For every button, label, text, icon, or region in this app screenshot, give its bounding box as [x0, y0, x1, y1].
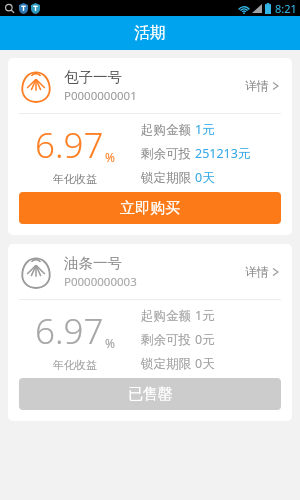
button[interactable]: 详情	[237, 72, 281, 99]
staticText: 6.97	[35, 121, 104, 169]
staticText: 6.97	[35, 307, 104, 355]
staticText: 立即购买	[120, 199, 180, 218]
staticText: 已售罄	[128, 385, 173, 404]
button[interactable]: 已售罄	[19, 378, 281, 410]
staticText: 0天	[195, 355, 215, 372]
staticText: 8:21	[275, 1, 297, 16]
staticText: 251213元	[195, 145, 251, 162]
staticText: 年化收益	[53, 358, 97, 372]
staticText: P0000000003	[64, 274, 137, 290]
staticText: %	[105, 335, 115, 351]
staticText: %	[105, 149, 115, 165]
staticText: 年化收益	[53, 172, 97, 186]
staticText: 0元	[195, 331, 215, 348]
staticText: 1元	[195, 307, 215, 324]
staticText: 起购金额	[141, 122, 191, 138]
staticText: 包子一号	[64, 68, 122, 86]
staticText: 1元	[195, 121, 215, 138]
button[interactable]: 详情	[237, 258, 281, 285]
staticText: 锁定期限	[141, 170, 191, 186]
staticText: 0天	[195, 169, 215, 186]
staticText: P0000000001	[64, 88, 137, 104]
staticText: 剩余可投	[141, 332, 191, 348]
staticText: 锁定期限	[141, 356, 191, 372]
button[interactable]: 立即购买	[19, 192, 281, 224]
staticText: 活期	[134, 23, 166, 43]
button[interactable]: 油条一号	[8, 244, 292, 421]
staticText: 剩余可投	[141, 146, 191, 162]
staticText: 油条一号	[64, 254, 122, 272]
staticText: 起购金额	[141, 308, 191, 324]
staticText: 详情	[245, 78, 269, 93]
staticText: 详情	[245, 264, 269, 279]
button[interactable]: 包子一号	[8, 58, 292, 235]
